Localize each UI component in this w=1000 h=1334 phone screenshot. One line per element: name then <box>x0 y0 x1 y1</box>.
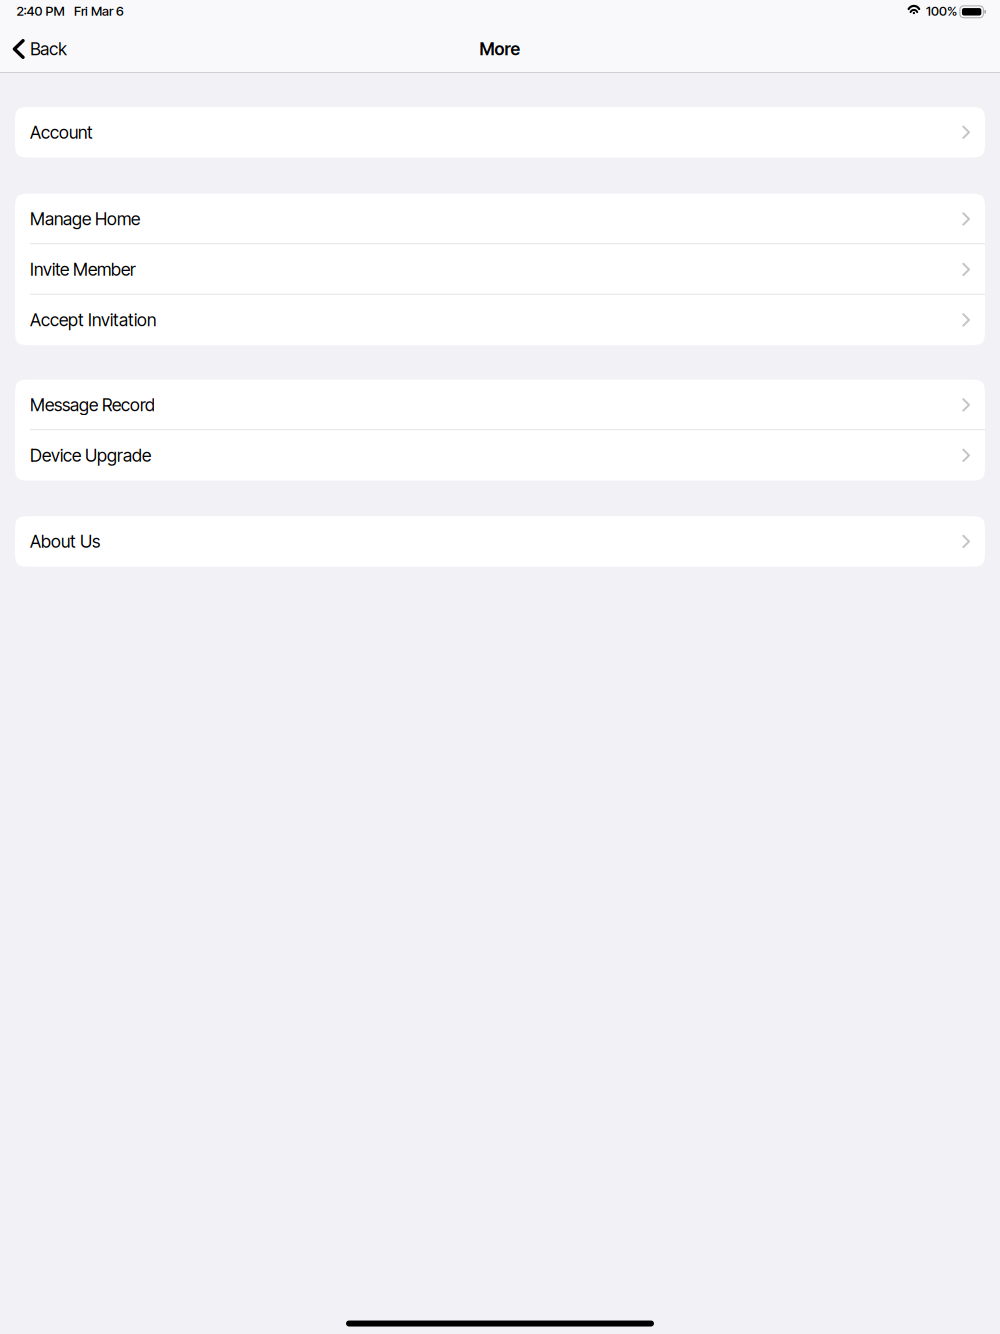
button[interactable]: Message Record <box>15 380 985 430</box>
staticText: About Us <box>30 531 100 552</box>
button[interactable]: Account <box>15 107 985 157</box>
staticText: Back <box>30 38 67 59</box>
staticText: More <box>479 38 520 59</box>
staticText: 2:40 PM <box>16 3 64 19</box>
staticText: Device Upgrade <box>30 445 151 466</box>
staticText: 100% <box>926 3 957 19</box>
staticText: Message Record <box>30 394 155 415</box>
button[interactable]: Back <box>0 26 77 72</box>
button[interactable]: Accept Invitation <box>15 295 985 345</box>
staticText: Fri Mar 6 <box>74 3 124 19</box>
button[interactable]: About Us <box>15 516 985 567</box>
button[interactable]: Manage Home <box>15 194 985 244</box>
staticText: Account <box>30 122 93 143</box>
button[interactable]: Device Upgrade <box>15 430 985 481</box>
button[interactable]: Invite Member <box>15 244 985 295</box>
staticText: Invite Member <box>30 259 136 280</box>
staticText: Manage Home <box>30 208 140 229</box>
staticText: Accept Invitation <box>30 309 156 330</box>
